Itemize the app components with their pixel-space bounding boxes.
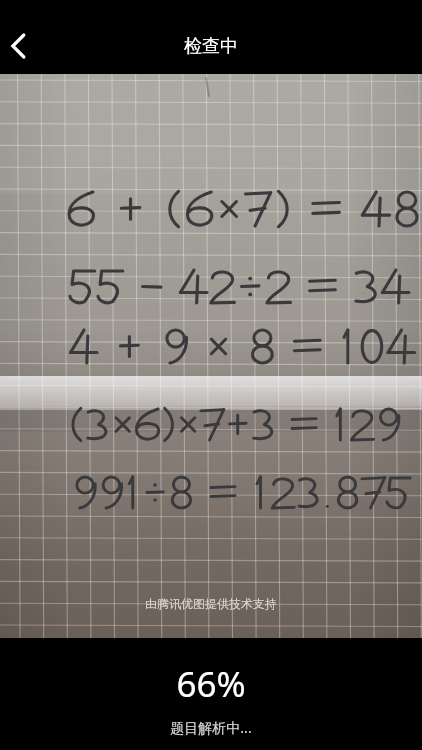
button[interactable]: Back — [0, 19, 54, 73]
staticText: 检查中 — [184, 35, 238, 58]
staticText: 题目解析中... — [170, 718, 252, 737]
staticText: 由腾讯优图提供技术支持 — [145, 596, 277, 611]
staticText: 66% — [176, 660, 246, 708]
